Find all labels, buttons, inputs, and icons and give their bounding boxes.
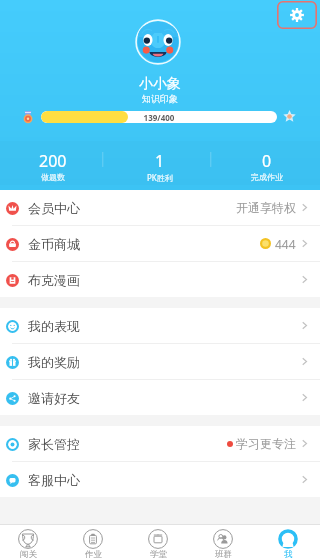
button[interactable]: 会员中心: [0, 190, 320, 225]
button[interactable]: 作业: [62, 525, 124, 558]
staticText: 我的奖励: [28, 354, 80, 370]
staticText: 客服中心: [28, 472, 80, 488]
staticText: 139/400: [41, 112, 277, 123]
button[interactable]: 客服中心: [0, 462, 320, 497]
button[interactable]: 0: [213, 141, 320, 185]
button[interactable]: 200: [0, 141, 106, 185]
staticText: 200: [39, 150, 67, 172]
staticText: 班群: [215, 549, 232, 558]
staticText: 知识印象: [142, 93, 178, 104]
button[interactable]: 1: [106, 141, 213, 185]
button[interactable]: 我的表现: [0, 308, 320, 343]
button[interactable]: 学堂: [127, 525, 189, 558]
button[interactable]: 金币商城: [0, 226, 320, 261]
staticText: 1: [155, 150, 165, 172]
button[interactable]: Settings: [277, 1, 317, 29]
staticText: 完成作业: [251, 172, 283, 182]
staticText: 我的表现: [28, 318, 80, 334]
staticText: PK胜利: [147, 172, 173, 183]
staticText: 0: [262, 150, 272, 172]
staticText: 开通享特权: [236, 200, 296, 215]
staticText: 金币商城: [28, 236, 80, 252]
staticText: 闯关: [20, 549, 37, 558]
button[interactable]: 邀请好友: [0, 380, 320, 415]
button[interactable]: 班群: [192, 525, 254, 558]
staticText: 学堂: [150, 549, 167, 558]
staticText: 邀请好友: [28, 390, 80, 406]
button[interactable]: 闯关: [0, 525, 59, 558]
staticText: 做题数: [41, 172, 65, 182]
staticText: 布克漫画: [28, 272, 80, 288]
staticText: 作业: [85, 549, 102, 558]
staticText: 我: [284, 549, 293, 558]
staticText: 小小象: [139, 75, 181, 93]
button[interactable]: 我: [257, 525, 319, 558]
button[interactable]: 布克漫画: [0, 262, 320, 297]
staticText: 会员中心: [28, 200, 80, 216]
button[interactable]: 家长管控: [0, 426, 320, 461]
staticText: 444: [275, 236, 296, 252]
staticText: 家长管控: [28, 436, 80, 452]
staticText: 学习更专注: [236, 436, 296, 451]
button[interactable]: 我的奖励: [0, 344, 320, 379]
button[interactable]: Avatar: [135, 19, 181, 65]
